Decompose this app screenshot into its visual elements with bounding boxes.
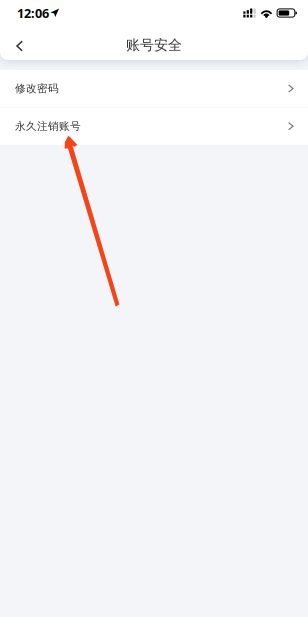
button[interactable]: 修改密码 [0, 70, 308, 107]
staticText: 12:06 [17, 4, 49, 22]
staticText: 账号安全 [126, 36, 182, 54]
button[interactable]: 永久注销账号 [0, 108, 308, 145]
button[interactable]: Back [0, 26, 38, 60]
staticText: 修改密码 [15, 82, 59, 95]
staticText: 永久注销账号 [15, 119, 81, 133]
